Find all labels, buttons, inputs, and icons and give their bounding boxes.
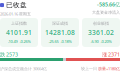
staticText: 上证指数 xyxy=(11,21,27,26)
staticText: -25.65 xyxy=(48,39,58,44)
staticText: 涨 2371 xyxy=(102,51,120,58)
staticText: 放量 xyxy=(97,66,106,71)
staticText: -6.90 xyxy=(90,39,98,44)
staticText: 4101.91 xyxy=(6,28,32,37)
staticText: -10.49 xyxy=(7,39,17,44)
staticText: +1180亿 xyxy=(106,66,120,71)
button[interactable]: 上证指数 xyxy=(0,18,38,47)
staticText: -0.26% xyxy=(19,39,30,44)
button[interactable]: 深证成指 xyxy=(41,18,79,47)
staticText: 跌 2573 xyxy=(0,51,18,58)
staticText: 14281.08 xyxy=(45,28,75,37)
staticText: 沪深总成交额合计 30664亿 xyxy=(0,66,47,71)
staticText: 较上一日 xyxy=(81,66,97,71)
staticText: 3361.02 xyxy=(88,28,114,37)
staticText: 深证成指 xyxy=(52,21,68,26)
staticText: 2026-01-16 星期五 xyxy=(0,11,31,16)
staticText: 已收盘 xyxy=(6,1,27,9)
staticText: 创业板指 xyxy=(93,21,109,26)
staticText: -0.20% xyxy=(100,39,111,44)
staticText: -0.18% xyxy=(60,39,71,44)
staticText: 大盘资金净流入 xyxy=(92,10,120,15)
staticText: -585.66亿 xyxy=(97,1,120,8)
button[interactable]: 创业板指 xyxy=(82,18,120,47)
button[interactable]: 已收盘 xyxy=(0,1,27,9)
